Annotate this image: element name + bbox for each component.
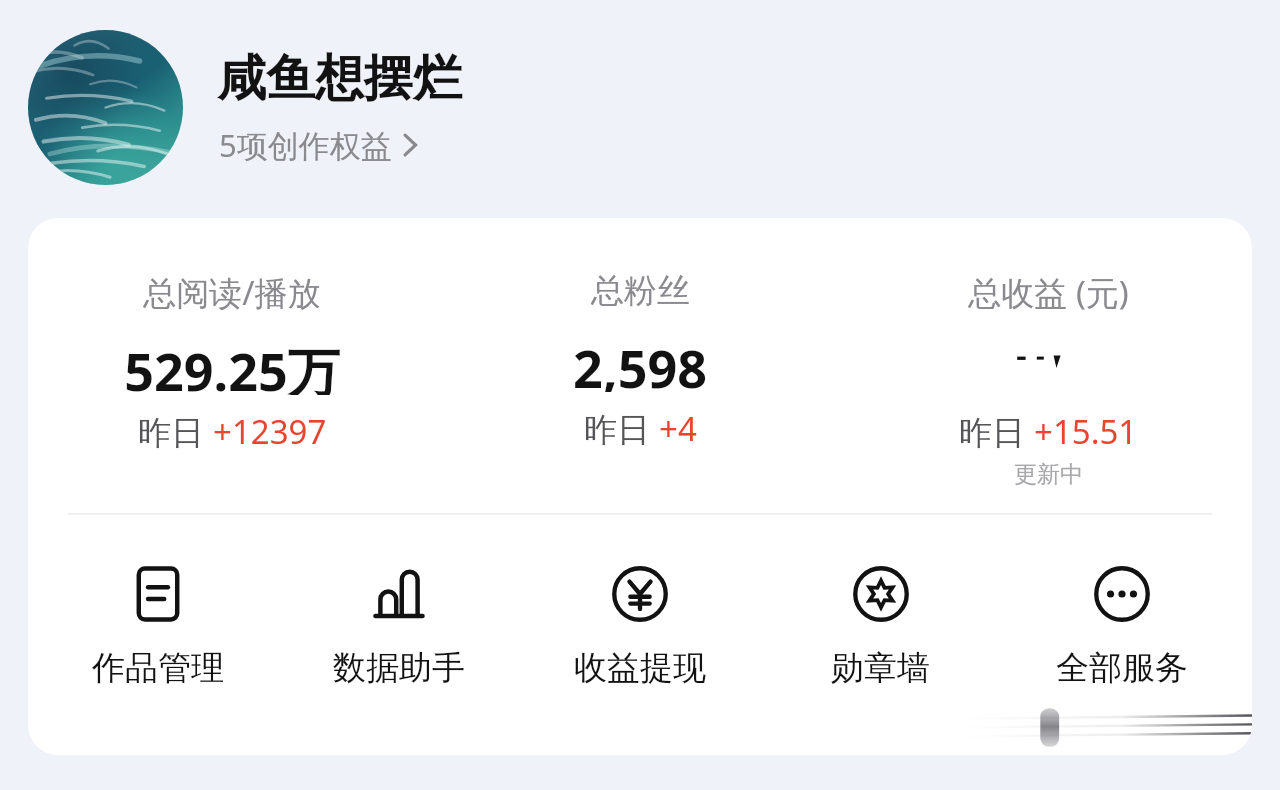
button[interactable]: 5项创作权益 xyxy=(217,122,421,168)
button[interactable]: Profile avatar xyxy=(28,30,183,185)
staticText: 总粉丝 xyxy=(591,270,690,312)
button[interactable]: 总阅读/播放 xyxy=(28,268,436,456)
staticText: 529.25万 xyxy=(124,335,340,395)
staticText: 昨日 xyxy=(959,409,1034,454)
staticText: 5项创作权益 xyxy=(219,124,392,166)
button[interactable]: 收益提现 xyxy=(519,559,760,693)
button[interactable]: 作品管理 xyxy=(38,559,278,693)
staticText: 总收益 (元) xyxy=(968,270,1129,315)
staticText: 全部服务 xyxy=(1056,647,1188,689)
staticText: +15.51 xyxy=(1034,409,1138,454)
staticText: 收益提现 xyxy=(574,647,706,689)
button[interactable]: 数据助手 xyxy=(278,559,519,693)
staticText: +4 xyxy=(659,406,697,451)
button[interactable]: 总粉丝 xyxy=(436,268,844,453)
button[interactable]: 全部服务 xyxy=(1001,559,1242,693)
button[interactable]: 勋章墙 xyxy=(760,559,1001,693)
staticText: 昨日 xyxy=(584,406,659,451)
staticText: 作品管理 xyxy=(92,647,224,689)
staticText: 咸鱼想摆烂 xyxy=(217,48,462,110)
button[interactable]: 总收益 (元) xyxy=(844,268,1252,491)
staticText: 勋章墙 xyxy=(831,647,930,689)
staticText: 数据助手 xyxy=(333,647,465,689)
staticText: +12397 xyxy=(213,409,327,454)
staticText: 更新中 xyxy=(1014,460,1083,489)
staticText: 总阅读/播放 xyxy=(143,270,321,315)
staticText: 2,598 xyxy=(573,332,707,392)
staticText: 昨日 xyxy=(138,409,213,454)
